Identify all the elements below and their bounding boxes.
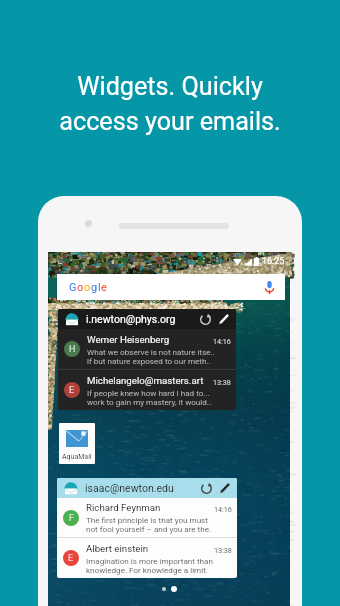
staticText: access your emails. xyxy=(59,107,281,137)
staticText: What we observe is not nature itse.. xyxy=(87,347,215,356)
staticText: g xyxy=(91,281,98,294)
button[interactable]: E xyxy=(63,538,232,578)
button[interactable]: F xyxy=(63,498,232,537)
button[interactable]: isaac@newton.edu xyxy=(57,478,237,578)
staticText: knowledge. For knowledge a limit. xyxy=(86,565,208,574)
staticText: Michelangelo@masters.art xyxy=(87,375,204,386)
button[interactable]: E xyxy=(64,370,231,410)
staticText: lf but nature exposed to our meth.. xyxy=(87,356,211,365)
staticText: AquaMail xyxy=(62,453,92,461)
button[interactable]: AquaMail xyxy=(59,423,95,464)
staticText: i.newton@phys.org xyxy=(86,313,176,325)
staticText: F xyxy=(69,513,74,524)
other: Voice search xyxy=(265,281,274,294)
other: Compose xyxy=(218,313,230,325)
staticText: 13:38 xyxy=(213,378,231,386)
staticText: Richard Feynman xyxy=(86,502,161,513)
other: Refresh xyxy=(200,314,211,325)
button[interactable]: G xyxy=(57,274,285,300)
staticText: 14:16 xyxy=(213,337,231,345)
staticText: l xyxy=(98,281,101,294)
staticText: isaac@newton.edu xyxy=(85,482,174,494)
staticText: e xyxy=(101,281,107,294)
staticText: 13:38 xyxy=(214,546,232,554)
staticText: Widgets. Quickly xyxy=(77,72,263,102)
button[interactable]: i.newton@phys.org xyxy=(58,309,236,410)
button[interactable]: H xyxy=(64,329,231,369)
other: Compose xyxy=(219,482,231,494)
staticText: The first principle is that you must xyxy=(86,515,208,524)
staticText: If people knew how hard I had to... xyxy=(87,388,210,397)
staticText: work to gain my mastery, it would.. xyxy=(87,397,212,406)
staticText: 14:16 xyxy=(214,505,232,513)
staticText: G xyxy=(69,281,77,294)
staticText: Werner Heisenberg xyxy=(87,334,170,345)
staticText: Albert einstein xyxy=(86,543,149,554)
staticText: H xyxy=(69,344,76,355)
staticText: o xyxy=(84,281,91,294)
staticText: 16:25 xyxy=(262,256,285,267)
staticText: Imagination is more important than xyxy=(86,556,213,565)
staticText: o xyxy=(77,281,84,294)
staticText: E xyxy=(69,385,75,396)
other: Refresh xyxy=(201,483,212,494)
staticText: not fool yourself – and you are the. xyxy=(86,524,212,533)
staticText: E xyxy=(68,553,74,564)
